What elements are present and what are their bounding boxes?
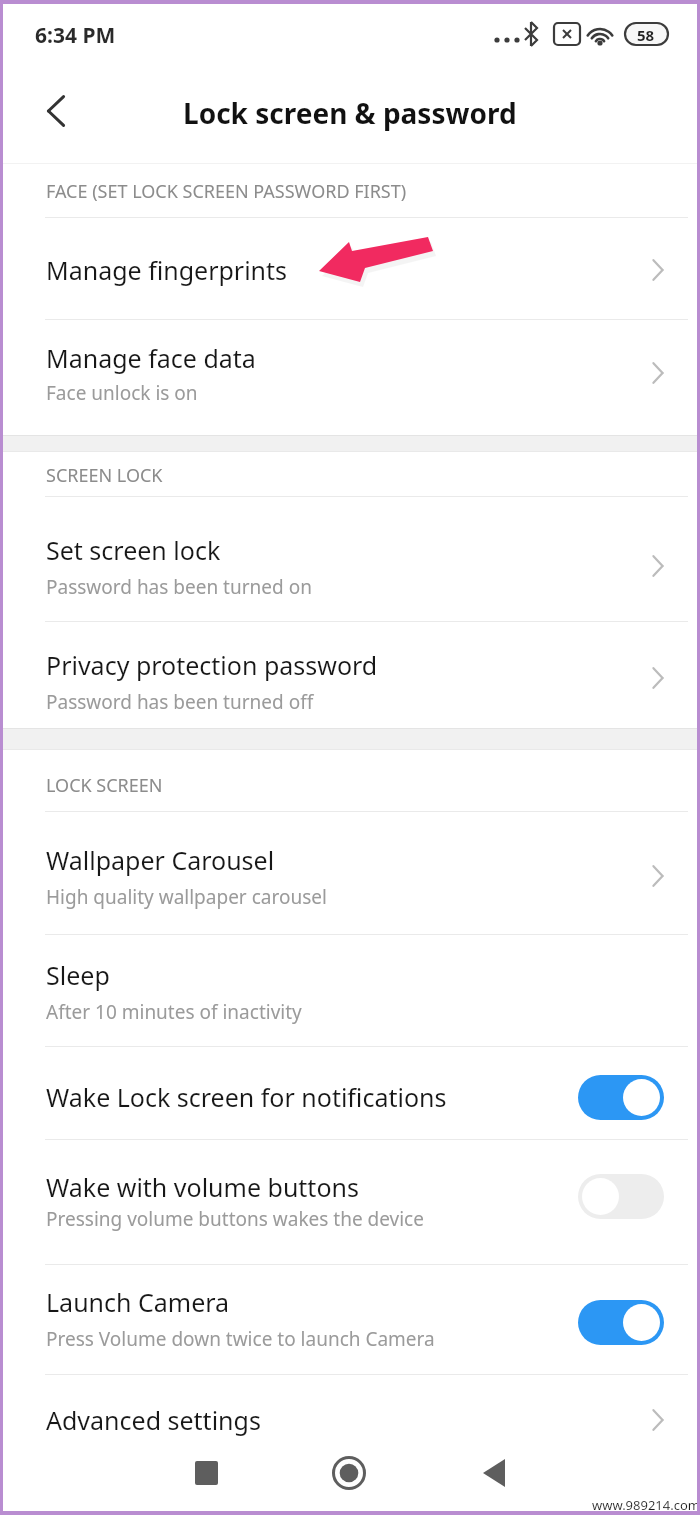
staticText: Wake with volume buttons xyxy=(46,1170,359,1204)
staticText: www.989214.com xyxy=(592,1496,700,1514)
button[interactable]: Manage face data xyxy=(0,320,700,435)
staticText: Set screen lock xyxy=(46,533,221,567)
button[interactable] xyxy=(0,1438,234,1511)
button[interactable] xyxy=(47,95,65,127)
staticText: Privacy protection password xyxy=(46,648,378,682)
staticText: Wallpaper Carousel xyxy=(46,843,275,877)
staticText: SCREEN LOCK xyxy=(46,463,163,488)
staticText: 58 xyxy=(637,25,655,45)
staticText: Wake Lock screen for notifications xyxy=(46,1080,447,1114)
button[interactable]: Sleep xyxy=(0,935,700,1047)
staticText: Advanced settings xyxy=(46,1403,261,1437)
staticText: 6:34 PM xyxy=(35,21,116,50)
staticText: Password has been turned on xyxy=(46,574,312,600)
button[interactable]: Manage fingerprints xyxy=(0,218,700,320)
staticText: FACE (SET LOCK SCREEN PASSWORD FIRST) xyxy=(46,179,407,204)
button[interactable] xyxy=(578,1075,664,1120)
button[interactable]: Set screen lock xyxy=(0,497,700,622)
button[interactable]: Wake Lock screen for notifications xyxy=(0,1047,700,1140)
button[interactable]: Wake with volume buttons xyxy=(0,1140,700,1265)
staticText: Face unlock is on xyxy=(46,380,198,406)
button[interactable]: Wallpaper Carousel xyxy=(0,812,700,935)
button[interactable] xyxy=(234,1438,467,1511)
staticText: Press Volume down twice to launch Camera xyxy=(46,1326,435,1352)
staticText: Manage face data xyxy=(46,341,256,375)
staticText: Manage fingerprints xyxy=(46,253,288,287)
button[interactable]: Advanced settings xyxy=(0,1375,700,1438)
button[interactable]: Privacy protection password xyxy=(0,622,700,728)
staticText: High quality wallpaper carousel xyxy=(46,884,327,910)
button[interactable] xyxy=(578,1174,664,1219)
staticText: Launch Camera xyxy=(46,1285,230,1319)
staticText: Password has been turned off xyxy=(46,689,314,715)
staticText: Lock screen & password xyxy=(183,94,517,132)
button[interactable] xyxy=(467,1438,700,1511)
button[interactable] xyxy=(578,1300,664,1345)
staticText: Pressing volume buttons wakes the device xyxy=(46,1206,424,1232)
staticText: After 10 minutes of inactivity xyxy=(46,999,302,1025)
staticText: Sleep xyxy=(46,958,110,992)
button[interactable]: Launch Camera xyxy=(0,1265,700,1375)
staticText: LOCK SCREEN xyxy=(46,773,163,798)
